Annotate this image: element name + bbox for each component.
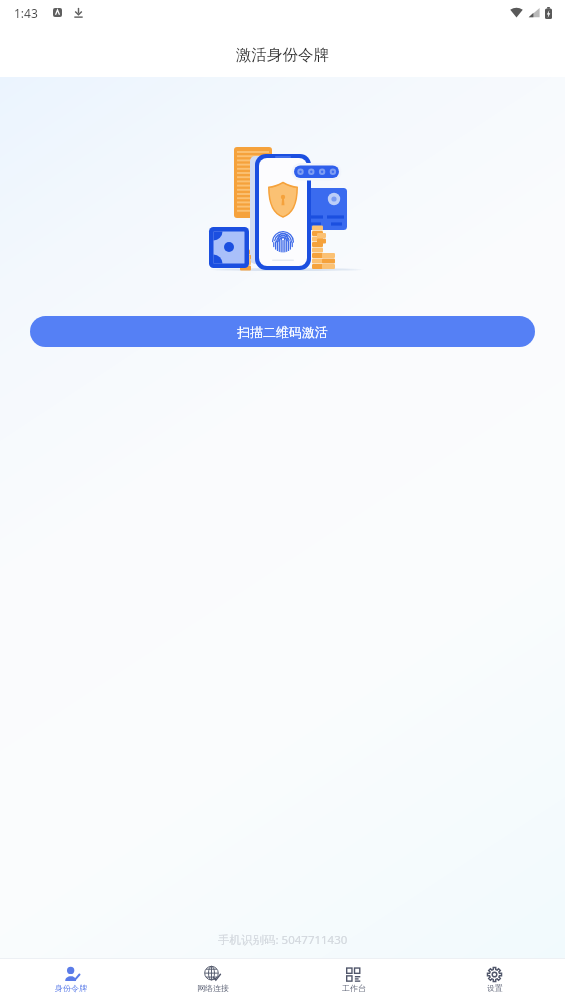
button[interactable]: 扫描二维码激活 — [30, 316, 535, 347]
button[interactable]: 身份令牌 — [0, 959, 142, 1004]
button[interactable]: 网络连接 — [142, 959, 283, 1004]
staticText: 身份令牌 — [55, 983, 87, 993]
button[interactable]: 工作台 — [283, 959, 424, 1004]
staticText: 激活身份令牌 — [236, 45, 329, 65]
staticText: 扫描二维码激活 — [237, 324, 328, 340]
staticText: 设置 — [487, 983, 503, 993]
button[interactable]: 设置 — [424, 959, 565, 1004]
staticText: 手机识别码: 5047711430 — [218, 932, 348, 948]
staticText: 1:43 — [14, 5, 38, 21]
staticText: 网络连接 — [197, 983, 229, 993]
staticText: 工作台 — [342, 983, 366, 993]
